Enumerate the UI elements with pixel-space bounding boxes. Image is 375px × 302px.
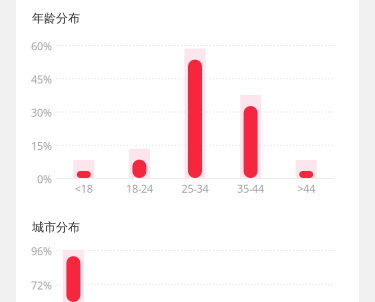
button[interactable]: 年龄分布 [32, 11, 80, 26]
staticText: 60% [31, 39, 52, 53]
staticText: 18-24 [126, 181, 153, 196]
staticText: 年龄分布 [32, 11, 80, 26]
staticText: <18 [75, 181, 93, 196]
staticText: 15% [31, 139, 52, 153]
staticText: 0% [37, 172, 52, 186]
staticText: 35-44 [237, 181, 264, 196]
button[interactable]: 城市分布 [32, 220, 80, 235]
staticText: 96% [31, 244, 52, 258]
staticText: 城市分布 [32, 220, 80, 235]
staticText: 25-34 [181, 181, 208, 196]
staticText: >44 [297, 181, 315, 196]
staticText: 72% [31, 278, 52, 292]
staticText: 45% [31, 72, 52, 86]
staticText: 30% [31, 105, 52, 120]
